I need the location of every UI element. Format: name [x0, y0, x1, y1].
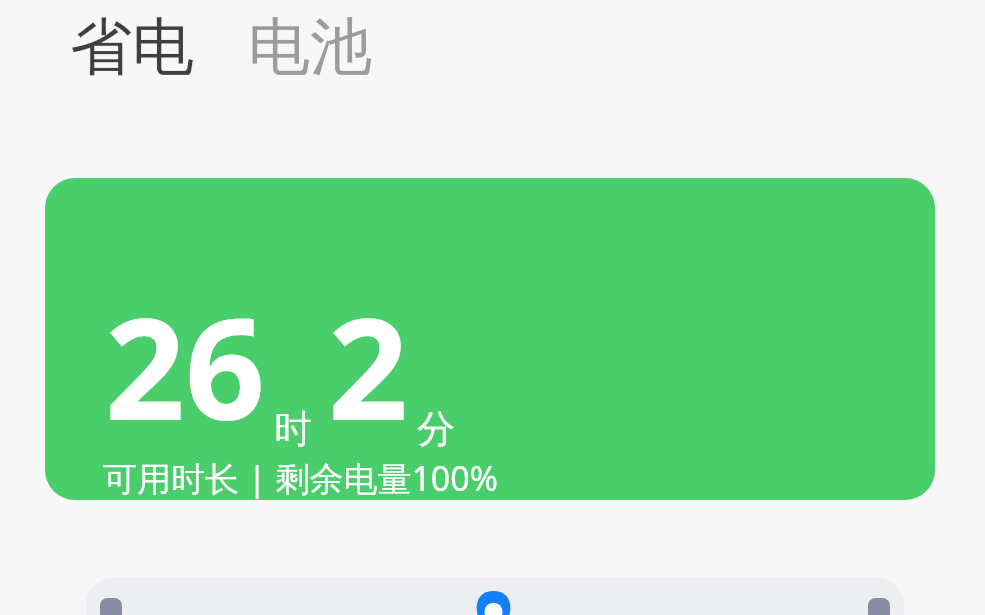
staticText: 26 [105, 270, 266, 461]
button[interactable]: 省电 [68, 8, 196, 86]
button[interactable]: 26 [45, 178, 935, 500]
staticText: 时 [274, 405, 312, 453]
button[interactable]: Item [86, 578, 904, 615]
staticText: 分 [417, 405, 455, 453]
staticText: 电池 [248, 8, 372, 86]
staticText: 2 [328, 270, 409, 461]
other: Location [471, 591, 516, 615]
other: Item [100, 598, 122, 615]
staticText: 可用时长 | 剩余电量100% [103, 455, 499, 500]
button[interactable]: 电池 [246, 8, 374, 86]
other: Item [868, 598, 890, 615]
staticText: 省电 [70, 8, 194, 86]
